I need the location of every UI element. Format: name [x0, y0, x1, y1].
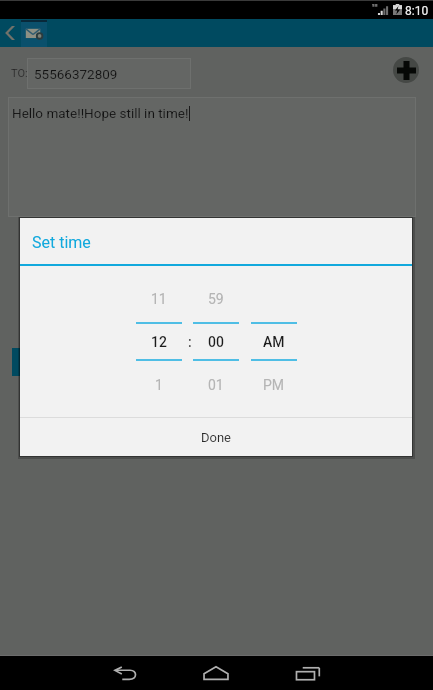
staticText: 1 — [155, 377, 163, 393]
button[interactable]: Recent apps — [282, 656, 334, 690]
staticText: 12 — [151, 334, 167, 350]
staticText: : — [188, 334, 192, 350]
staticText: 59 — [208, 291, 224, 307]
button[interactable]: Scheduled message — [21, 21, 47, 47]
staticText: 55566372809 — [34, 66, 118, 82]
button[interactable]: Back — [99, 656, 151, 690]
staticText: Set time — [32, 233, 91, 252]
staticText: AM — [263, 334, 285, 350]
staticText: TO: — [11, 67, 28, 80]
button[interactable]: SET TIME — [12, 348, 132, 376]
staticText: 01 — [208, 377, 224, 393]
staticText: 00 — [208, 334, 224, 350]
staticText: Hello mate!!Hope still in time! — [12, 105, 189, 121]
button[interactable]: Add recipient — [393, 57, 419, 83]
button[interactable]: Home — [190, 656, 242, 690]
staticText: 8:10 — [405, 4, 429, 18]
button[interactable]: Hello mate!!Hope still in time! — [8, 97, 416, 217]
staticText: Done — [201, 430, 232, 445]
button[interactable]: 55566372809 — [27, 58, 191, 89]
staticText: 11 — [151, 291, 167, 307]
staticText: PM — [263, 377, 285, 393]
button[interactable]: Navigate up — [0, 19, 19, 47]
button[interactable]: Done — [20, 418, 412, 456]
